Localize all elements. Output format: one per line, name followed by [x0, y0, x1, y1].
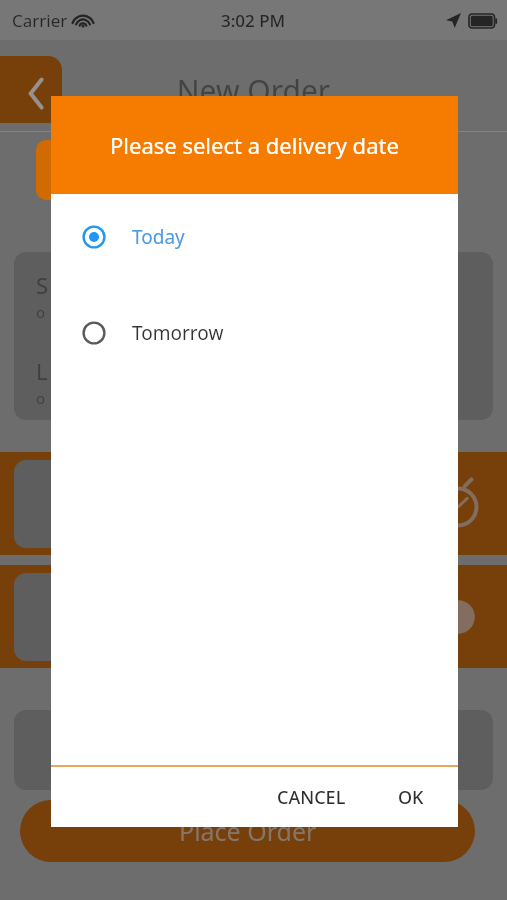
staticText: Carrier	[12, 9, 68, 32]
button[interactable]: S	[14, 252, 493, 420]
button[interactable]	[0, 565, 507, 668]
staticText: S	[36, 270, 49, 300]
staticText: 3:02 PM	[221, 9, 286, 32]
button[interactable]	[0, 452, 507, 555]
button[interactable]	[36, 140, 106, 200]
button[interactable]: Back	[0, 56, 62, 123]
staticText: o	[36, 388, 46, 408]
staticText: Please select a delivery date	[110, 130, 399, 160]
button[interactable]: CANCEL	[265, 777, 358, 818]
staticText: OK	[398, 785, 424, 810]
button[interactable]: Place Order	[20, 800, 475, 862]
staticText: Tomorrow	[132, 320, 224, 346]
button[interactable]: Today	[51, 212, 458, 262]
staticText: L	[36, 356, 48, 386]
staticText: o	[36, 302, 46, 322]
button[interactable]: Tomorrow	[51, 308, 458, 358]
staticText: Today	[132, 224, 185, 250]
staticText: New Order	[0, 70, 507, 111]
staticText: Place Order	[179, 814, 317, 848]
staticText: CANCEL	[277, 785, 346, 810]
button[interactable]	[14, 710, 493, 790]
button[interactable]: OK	[386, 777, 436, 818]
